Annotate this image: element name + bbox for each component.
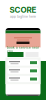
staticText: app tagline here — [10, 15, 36, 19]
staticText: SCORE — [9, 5, 36, 15]
staticText: book a service near you — [7, 46, 39, 53]
